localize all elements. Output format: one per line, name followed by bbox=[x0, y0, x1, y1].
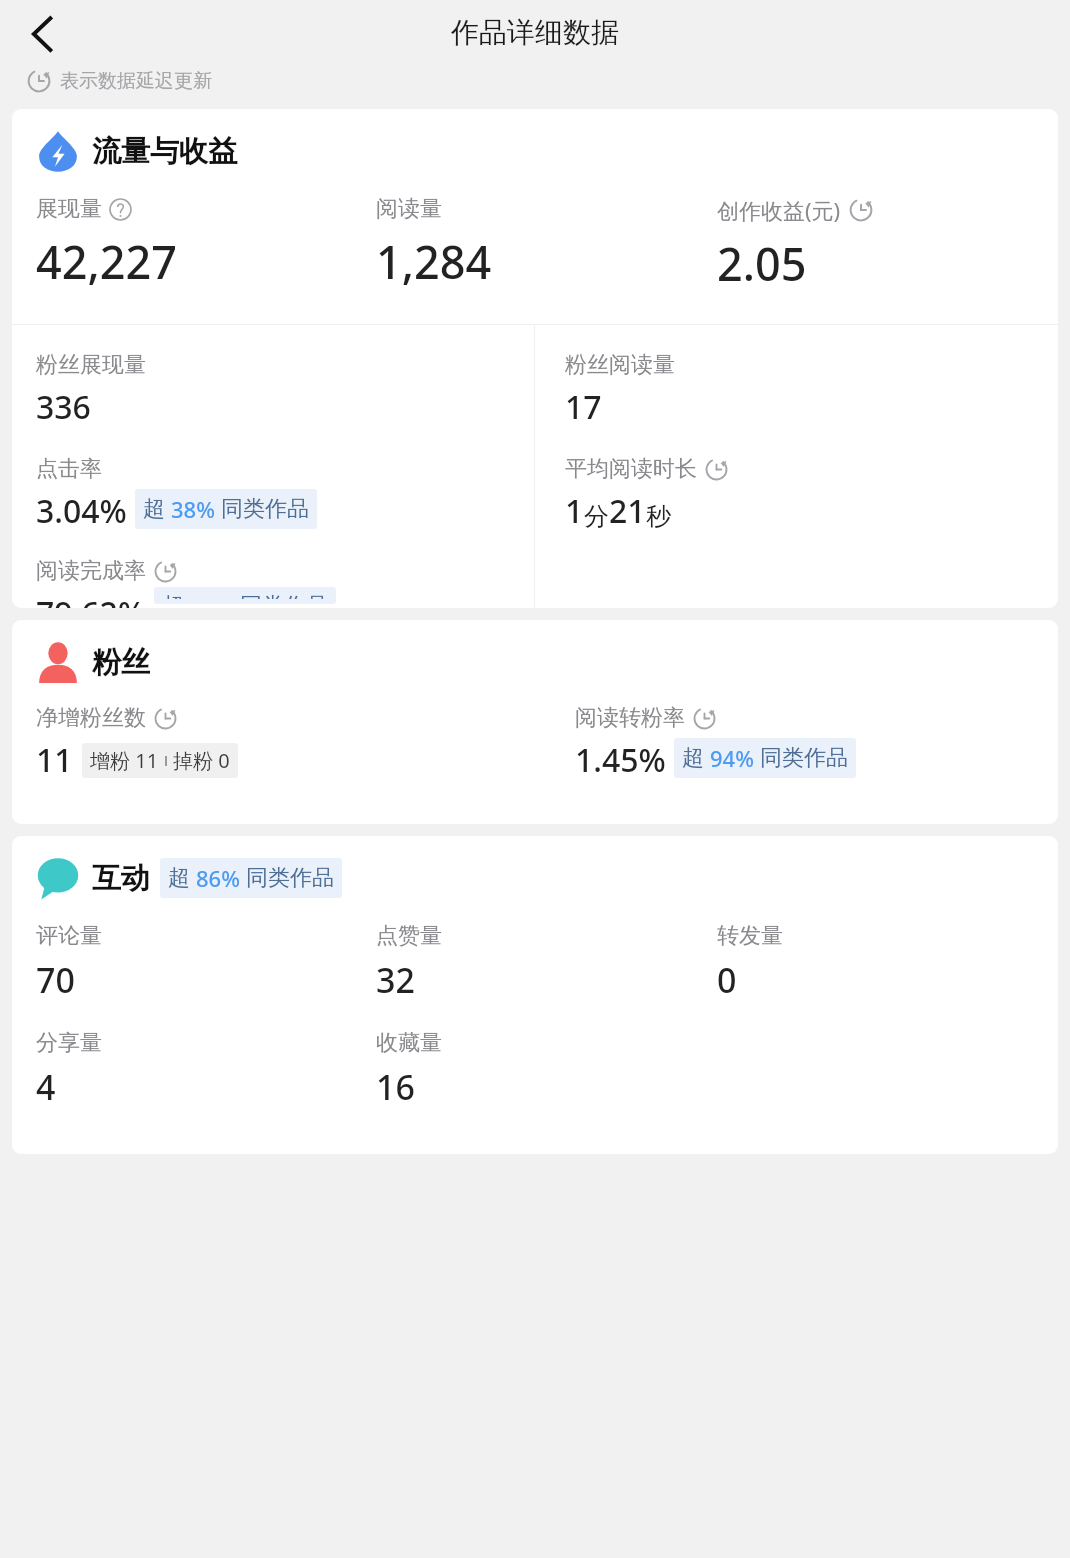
staticText: 同类作品 bbox=[246, 864, 334, 892]
staticText: 创作收益(元) bbox=[717, 195, 841, 225]
staticText: 38% bbox=[171, 494, 215, 524]
staticText: 净增粉丝数 bbox=[36, 704, 146, 732]
button[interactable]: 互动 bbox=[12, 836, 1058, 1154]
staticText: 粉丝 bbox=[92, 644, 150, 681]
staticText: 同类作品 bbox=[221, 495, 309, 523]
staticText: 粉丝展现量 bbox=[36, 351, 146, 379]
staticText: 评论量 bbox=[36, 922, 102, 950]
staticText: 粉丝阅读量 bbox=[565, 351, 675, 379]
staticText: 79.62% bbox=[36, 591, 146, 608]
staticText: 转发量 bbox=[717, 922, 783, 950]
staticText: 32 bbox=[376, 957, 415, 1003]
staticText: 表示数据延迟更新 bbox=[60, 69, 212, 93]
staticText: 阅读量 bbox=[376, 195, 442, 223]
staticText: 11 bbox=[36, 738, 73, 782]
staticText: 70 bbox=[36, 957, 75, 1003]
staticText: 1,284 bbox=[376, 231, 492, 292]
staticText: 4 bbox=[36, 1064, 56, 1110]
staticText: 86% bbox=[196, 863, 240, 893]
staticText: 分享量 bbox=[36, 1029, 102, 1057]
staticText: 互动 bbox=[92, 860, 150, 897]
staticText: 超 bbox=[168, 864, 190, 892]
staticText: 2.05 bbox=[717, 233, 807, 294]
button[interactable]: Back bbox=[20, 11, 66, 57]
staticText: 42,227 bbox=[36, 231, 177, 292]
staticText: 点赞量 bbox=[376, 922, 442, 950]
button[interactable]: 流量与收益 bbox=[12, 109, 1058, 608]
staticText: 超 bbox=[143, 495, 165, 523]
staticText: 16 bbox=[376, 1064, 415, 1110]
staticText: 17 bbox=[565, 385, 602, 429]
staticText: 掉粉 0 bbox=[173, 747, 230, 774]
staticText: 同类作品 bbox=[760, 744, 848, 772]
staticText: 336 bbox=[36, 385, 91, 429]
staticText: 展现量 bbox=[36, 195, 102, 223]
staticText: 超 bbox=[162, 592, 184, 599]
staticText: 94% bbox=[710, 743, 754, 773]
staticText: 1.45% bbox=[575, 738, 666, 782]
button[interactable]: 粉丝 bbox=[12, 620, 1058, 824]
staticText: 点击率 bbox=[36, 455, 102, 483]
staticText: 平均阅读时长 bbox=[565, 455, 697, 483]
staticText: 流量与收益 bbox=[92, 133, 237, 170]
staticText: 分 bbox=[584, 501, 609, 532]
staticText: 阅读完成率 bbox=[36, 557, 146, 585]
staticText: 21 bbox=[609, 489, 646, 533]
staticText: 超 bbox=[682, 744, 704, 772]
staticText: 1 bbox=[565, 489, 584, 533]
staticText: 0 bbox=[717, 957, 737, 1003]
staticText: 3.04% bbox=[36, 489, 127, 533]
staticText: 收藏量 bbox=[376, 1029, 442, 1057]
staticText: 同类作品 bbox=[240, 592, 328, 599]
staticText: 增粉 11 bbox=[90, 747, 159, 774]
staticText: 秒 bbox=[646, 501, 671, 532]
staticText: 阅读转粉率 bbox=[575, 704, 685, 732]
staticText: 作品详细数据 bbox=[451, 15, 619, 50]
